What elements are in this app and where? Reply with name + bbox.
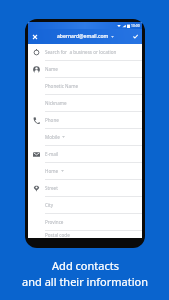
button[interactable]: Close (29, 31, 40, 42)
staticText: E-mail (45, 151, 59, 157)
staticText: Nickname (45, 100, 67, 106)
button[interactable]: Home (28, 163, 142, 180)
button[interactable]: Street (28, 180, 142, 197)
staticText: Mobile (45, 134, 60, 140)
staticText: Province (45, 219, 64, 225)
staticText: Add contacts (52, 258, 119, 273)
button[interactable]: Name (28, 61, 142, 78)
button[interactable]: Save contact (130, 31, 141, 42)
button[interactable]: Postal code (28, 231, 142, 238)
button[interactable]: Phone (28, 112, 142, 129)
button[interactable]: Phonetic Name (28, 78, 142, 95)
staticText: Home (45, 168, 59, 174)
staticText: Phone (45, 117, 59, 123)
staticText: 10:00 (131, 23, 140, 28)
staticText: Search for a business or location (45, 49, 117, 55)
staticText: and all their information (22, 274, 148, 289)
staticText: Phonetic Name (45, 83, 79, 89)
staticText: Name (45, 66, 58, 72)
button[interactable]: Province (28, 214, 142, 231)
button[interactable]: E-mail (28, 146, 142, 163)
button[interactable]: Nickname (28, 95, 142, 112)
button[interactable]: Search for a business or location (28, 44, 142, 61)
staticText: Street (45, 185, 58, 191)
staticText: City (45, 202, 54, 208)
button[interactable]: abernard@email.com (57, 33, 114, 40)
staticText: Postal code (45, 232, 70, 238)
staticText: abernard@email.com (57, 33, 109, 40)
button[interactable]: Mobile (28, 129, 142, 146)
button[interactable]: City (28, 197, 142, 214)
